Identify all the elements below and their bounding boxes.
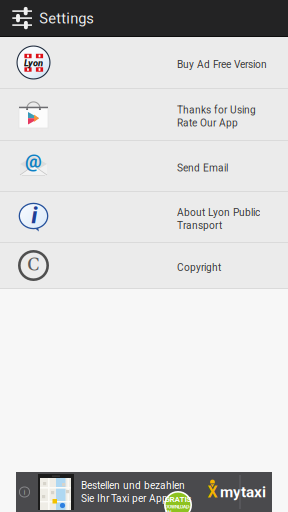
staticText: DOWNLOADEN <box>165 504 191 512</box>
staticText: About Lyon Public <box>177 207 260 218</box>
staticText: Settings <box>39 10 94 27</box>
staticText: GRATIS <box>164 495 191 504</box>
button[interactable]: C <box>0 243 288 289</box>
button[interactable]: @ <box>0 141 288 192</box>
staticText: Thanks for Using <box>177 104 256 116</box>
staticText: Rate Our App <box>177 117 238 129</box>
staticText: i <box>31 203 37 228</box>
staticText: X <box>207 483 217 501</box>
staticText: Sie Ihr Taxi per App. <box>81 492 171 504</box>
button[interactable]: Lyon <box>0 37 288 89</box>
staticText: i <box>23 487 25 497</box>
staticText: mytaxi <box>220 483 266 501</box>
staticText: Copyright <box>177 262 221 273</box>
button[interactable]: Thanks for Using <box>0 89 288 141</box>
staticText: @ <box>25 150 42 172</box>
staticText: Buy Ad Free Version <box>177 59 267 70</box>
staticText: Bestellen und bezahlen <box>81 480 185 491</box>
staticText: Lyon <box>24 57 43 68</box>
staticText: Send Email <box>177 162 228 174</box>
button[interactable]: i <box>16 472 272 512</box>
staticText: C <box>27 253 39 277</box>
staticText: Transport <box>177 219 222 231</box>
button[interactable]: i <box>0 192 288 243</box>
